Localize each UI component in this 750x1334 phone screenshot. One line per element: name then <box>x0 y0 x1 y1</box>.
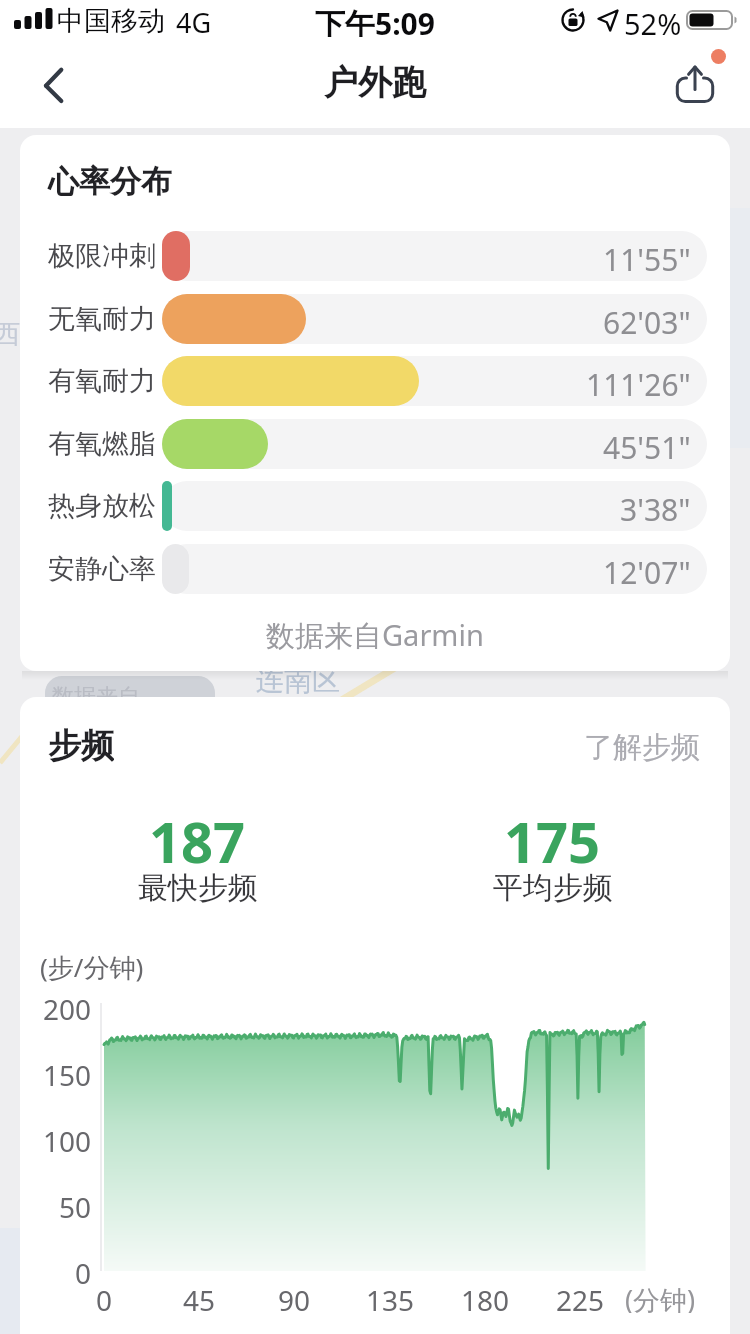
staticText: 步频 <box>48 725 114 765</box>
staticText: 户外跑 <box>324 61 426 104</box>
staticText: 数据来自... <box>52 680 158 706</box>
staticText: 175 <box>504 803 601 867</box>
staticText: 45'51" <box>603 427 691 461</box>
button[interactable] <box>26 48 86 122</box>
staticText: 心率分布 <box>48 162 172 201</box>
staticText: 62'03" <box>603 302 691 336</box>
button[interactable]: 了解步频 <box>500 729 700 763</box>
staticText: 0 <box>96 1281 113 1313</box>
staticText: 45 <box>183 1281 216 1313</box>
staticText: 无氧耐力 <box>48 302 156 336</box>
staticText: 111'26" <box>586 364 691 398</box>
button[interactable] <box>662 44 738 118</box>
staticText: 西 <box>0 318 20 350</box>
staticText: 有氧燃脂 <box>48 427 156 461</box>
staticText: 52% <box>624 4 682 36</box>
staticText: 极限冲刺 <box>48 239 156 273</box>
staticText: 数据来自Garmin <box>266 615 484 651</box>
staticText: 225 <box>556 1281 605 1313</box>
staticText: 安静心率 <box>48 552 156 586</box>
staticText: 3'38" <box>620 489 691 523</box>
staticText: 135 <box>366 1281 415 1313</box>
staticText: 180 <box>461 1281 510 1313</box>
staticText: 最快步频 <box>138 869 258 907</box>
staticText: 热身放松 <box>48 489 156 523</box>
staticText: 了解步频 <box>584 729 700 763</box>
staticText: (步/分钟) <box>40 949 144 983</box>
staticText: 90 <box>278 1281 311 1313</box>
staticText: 50 <box>59 1188 92 1222</box>
staticText: 中国移动 <box>57 4 165 36</box>
staticText: 187 <box>149 803 246 867</box>
staticText: 平均步频 <box>493 869 613 907</box>
staticText: 200 <box>43 990 92 1024</box>
staticText: 100 <box>43 1122 92 1156</box>
staticText: 4G <box>176 4 212 36</box>
staticText: 12'07" <box>603 552 691 586</box>
staticText: 连南区 <box>256 663 340 698</box>
staticText: 11'55" <box>603 239 691 273</box>
staticText: (分钟) <box>625 1281 696 1313</box>
staticText: 有氧耐力 <box>48 364 156 398</box>
staticText: 150 <box>43 1056 92 1090</box>
staticText: 下午5:09 <box>315 3 435 37</box>
staticText: 0 <box>75 1254 92 1288</box>
